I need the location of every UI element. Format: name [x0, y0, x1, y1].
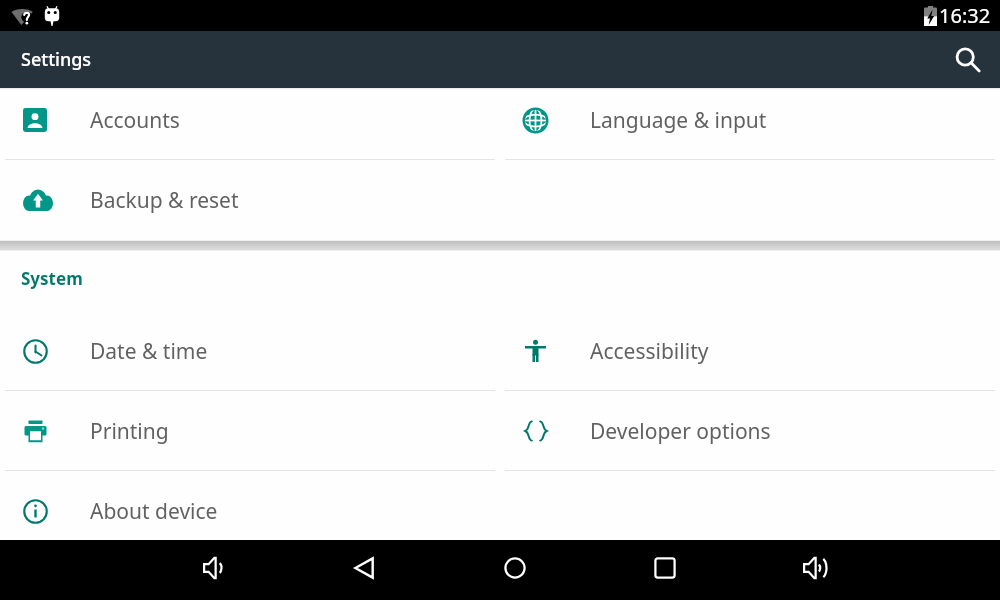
button[interactable]: Volume down	[187, 540, 243, 596]
button[interactable]: Printing	[0, 391, 500, 471]
button[interactable]: Accessibility	[500, 311, 1000, 391]
button[interactable]: Language & input	[500, 88, 1000, 160]
staticText: Accounts	[90, 106, 180, 135]
button[interactable]: Back	[337, 540, 393, 596]
staticText: Date & time	[90, 337, 208, 366]
button[interactable]: Recents	[637, 540, 693, 596]
staticText: 16:32	[939, 2, 991, 29]
button[interactable]: About device	[0, 471, 500, 540]
staticText: Settings	[21, 47, 92, 72]
button[interactable]: Home	[487, 540, 543, 596]
button[interactable]: Volume up	[787, 540, 843, 596]
staticText: About device	[90, 497, 218, 526]
button[interactable]: Search	[944, 36, 992, 84]
staticText: Language & input	[590, 106, 767, 135]
staticText: Backup & reset	[90, 186, 239, 215]
staticText: Accessibility	[590, 337, 709, 366]
staticText: System	[21, 267, 83, 290]
button[interactable]: Date & time	[0, 311, 500, 391]
staticText: Printing	[90, 417, 169, 446]
staticText: Developer options	[590, 417, 771, 446]
button[interactable]: Developer options	[500, 391, 1000, 471]
button[interactable]: Backup & reset	[0, 160, 500, 240]
button[interactable]: Accounts	[0, 88, 500, 160]
